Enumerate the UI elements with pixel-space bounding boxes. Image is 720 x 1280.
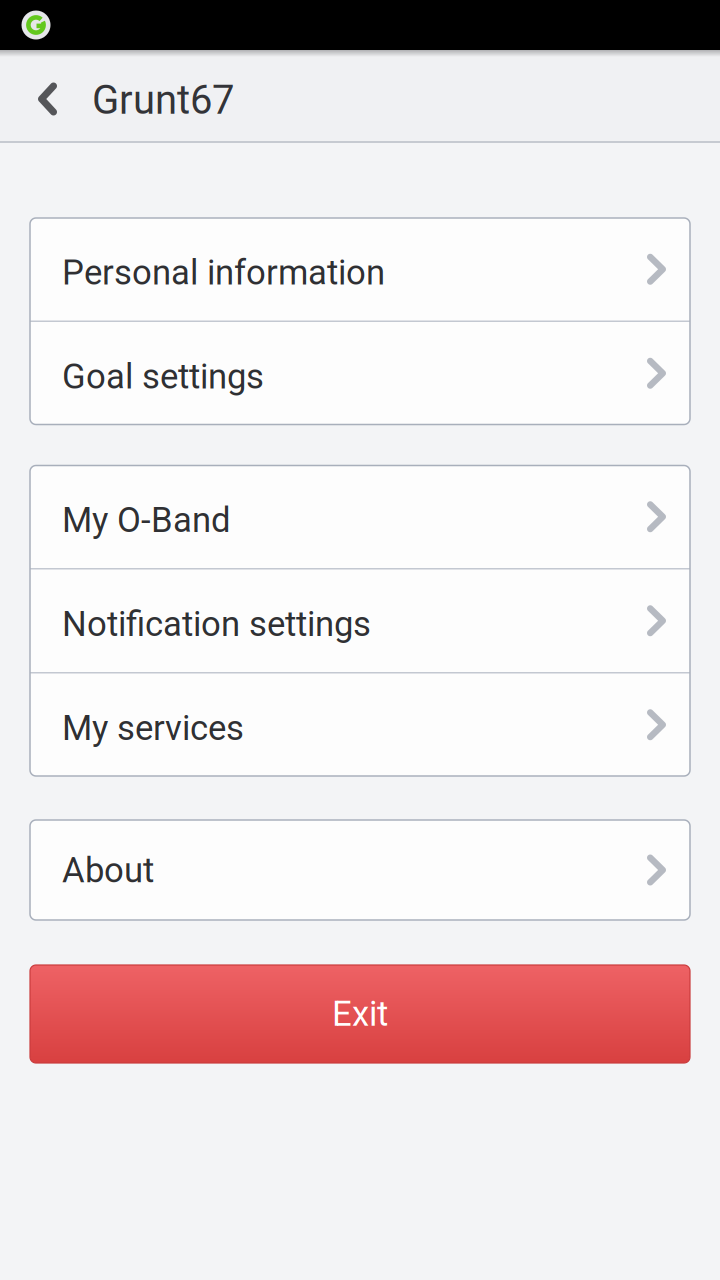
button[interactable]: About — [30, 820, 690, 920]
button[interactable]: My O-Band — [30, 465, 690, 568]
staticText: Personal information — [62, 252, 385, 293]
staticText: My O-Band — [62, 500, 231, 540]
staticText: Grunt67 — [92, 77, 234, 123]
staticText: Exit — [332, 994, 388, 1034]
staticText: My services — [62, 708, 244, 748]
button[interactable]: Goal settings — [30, 322, 690, 424]
button[interactable]: Back — [0, 50, 92, 143]
button[interactable]: Notification settings — [30, 569, 690, 672]
button[interactable]: My services — [30, 673, 690, 776]
staticText: Goal settings — [62, 356, 264, 397]
staticText: Notification settings — [62, 604, 371, 644]
staticText: About — [62, 850, 154, 891]
button[interactable]: Exit — [30, 965, 690, 1063]
button[interactable]: Personal information — [30, 218, 690, 320]
